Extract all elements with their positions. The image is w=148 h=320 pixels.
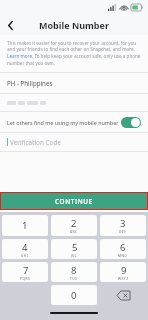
button[interactable]: Verification Code xyxy=(0,133,148,151)
staticText: 4 xyxy=(22,241,28,254)
staticText: Mobile Number xyxy=(39,19,109,31)
staticText: CONTINUE xyxy=(55,197,93,206)
button[interactable]: 4 xyxy=(2,239,48,259)
button[interactable]: 2 xyxy=(51,215,97,236)
staticText: PQRS xyxy=(20,277,31,281)
button[interactable]: 3 xyxy=(100,215,146,236)
staticText: ABC xyxy=(70,230,78,234)
button[interactable]: 9 xyxy=(100,262,146,282)
button[interactable] xyxy=(0,94,148,111)
staticText: This makes it easier for you to recover … xyxy=(7,40,141,67)
staticText: 0 xyxy=(71,289,77,302)
button[interactable]: CONTINUE xyxy=(1,193,147,209)
staticText: Verification Code xyxy=(10,138,61,147)
staticText: GHI xyxy=(21,254,29,258)
button[interactable]: 1 xyxy=(2,215,48,236)
staticText: 6 xyxy=(120,241,126,254)
staticText: 3 xyxy=(120,217,126,230)
button[interactable]: Let others find me using my mobile numbe… xyxy=(0,112,148,132)
staticText: 1 xyxy=(22,219,28,232)
button[interactable]: 5 xyxy=(51,239,97,259)
staticText: 2 xyxy=(71,217,77,230)
button[interactable]: PH - Philippines xyxy=(0,73,148,93)
button[interactable]: Back xyxy=(0,15,20,35)
button[interactable]: 8 xyxy=(51,262,97,282)
staticText: JKL xyxy=(71,254,78,258)
staticText: 8 xyxy=(71,264,77,277)
button[interactable]: Backspace xyxy=(100,285,146,305)
staticText: 7 xyxy=(23,264,29,277)
staticText: PH - Philippines xyxy=(7,79,53,87)
staticText: DEF xyxy=(119,230,127,234)
staticText: TUV xyxy=(70,277,78,281)
button[interactable]: 7 xyxy=(2,262,48,282)
button[interactable]: 6 xyxy=(100,239,146,259)
staticText: MNO xyxy=(118,254,128,258)
staticText: WXYZ xyxy=(118,277,129,281)
staticText: Let others find me using my mobile numbe… xyxy=(7,119,121,126)
staticText: 9 xyxy=(121,264,127,277)
staticText: 5 xyxy=(72,241,78,254)
button[interactable]: 0 xyxy=(51,285,97,305)
